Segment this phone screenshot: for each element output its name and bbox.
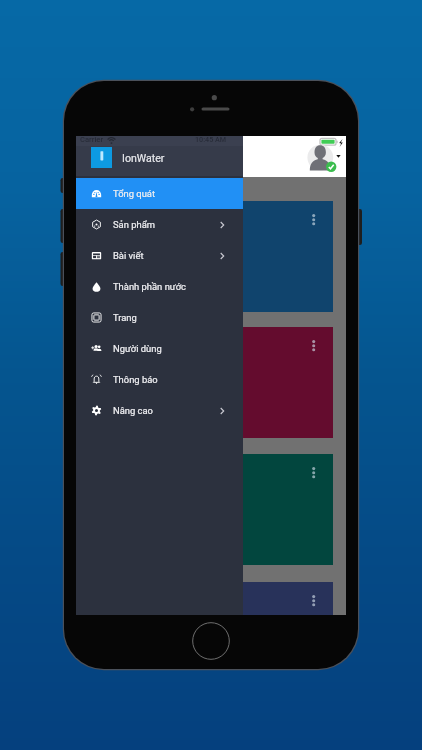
- button[interactable]: IonWater logo: [91, 147, 112, 168]
- staticText: Tổng quát: [113, 188, 155, 199]
- button[interactable]: More options: [243, 327, 333, 438]
- staticText: Trang: [113, 312, 137, 323]
- staticText: Thông báo: [113, 374, 158, 385]
- staticText: Sản phẩm: [113, 219, 155, 230]
- staticText: Thành phần nước: [113, 281, 186, 292]
- button[interactable]: More options: [305, 462, 323, 480]
- staticText: Người dùng: [113, 343, 162, 354]
- staticText: IonWater: [122, 152, 165, 164]
- button[interactable]: Trang: [76, 302, 243, 333]
- staticText: Nâng cao: [113, 405, 153, 416]
- button[interactable]: Nâng cao: [76, 395, 243, 426]
- button[interactable]: More options: [305, 590, 323, 608]
- button[interactable]: Thành phần nước: [76, 271, 243, 302]
- button[interactable]: More options: [305, 335, 323, 353]
- button[interactable]: Thông báo: [76, 364, 243, 395]
- button[interactable]: More options: [243, 201, 333, 312]
- button[interactable]: Bài viết: [76, 240, 243, 271]
- button[interactable]: More options: [243, 582, 333, 615]
- button[interactable]: Người dùng: [76, 333, 243, 364]
- button[interactable]: Tổng quát: [76, 178, 243, 209]
- staticText: Bài viết: [113, 250, 144, 261]
- button[interactable]: More options: [243, 454, 333, 565]
- staticText: Carrier: [80, 136, 104, 144]
- button[interactable]: More options: [305, 209, 323, 227]
- button[interactable]: Sản phẩm: [76, 209, 243, 240]
- staticText: 10:45 AM: [195, 136, 227, 143]
